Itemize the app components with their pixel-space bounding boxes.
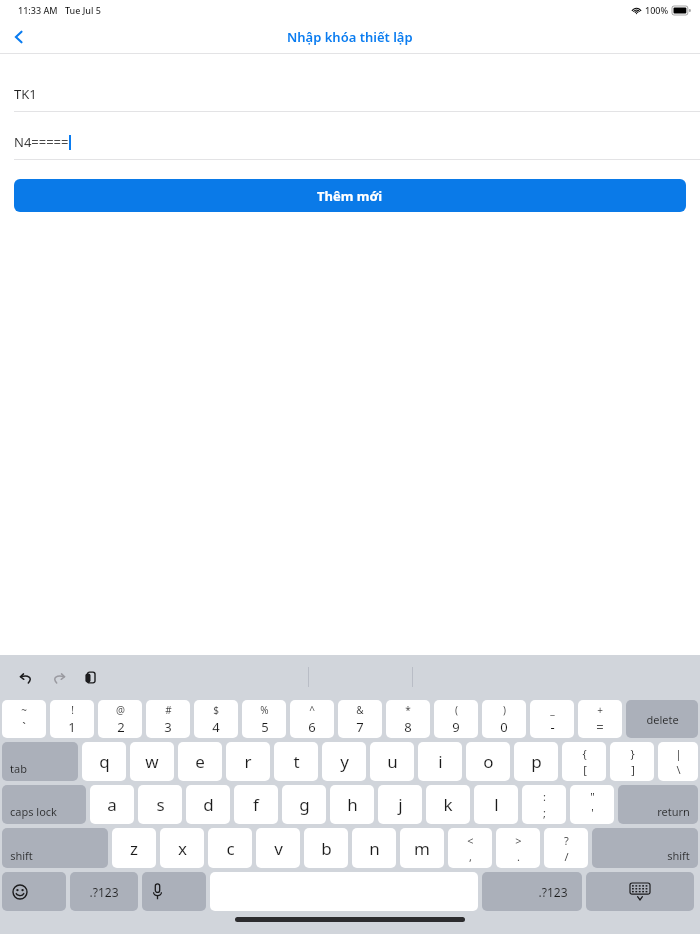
button[interactable]: c — [208, 828, 252, 868]
button[interactable]: ? — [544, 828, 588, 868]
staticText: return — [657, 804, 690, 819]
button[interactable]: @ — [98, 700, 142, 738]
button[interactable]: " — [570, 785, 614, 824]
button[interactable]: + — [578, 700, 622, 738]
button[interactable]: return — [618, 785, 698, 824]
button[interactable]: t — [274, 742, 318, 781]
button[interactable]: x — [160, 828, 204, 868]
button[interactable]: i — [418, 742, 462, 781]
button[interactable]: n — [352, 828, 396, 868]
staticText: . — [517, 849, 520, 864]
button[interactable]: p — [514, 742, 558, 781]
staticText: \ — [676, 762, 681, 777]
button[interactable]: _ — [530, 700, 574, 738]
staticText: 2 — [117, 718, 125, 736]
button[interactable]: d — [186, 785, 230, 824]
button[interactable]: shift — [2, 828, 108, 868]
button[interactable]: $ — [194, 700, 238, 738]
button[interactable]: m — [400, 828, 444, 868]
button[interactable]: shift — [592, 828, 698, 868]
staticText: d — [203, 793, 214, 816]
button[interactable]: u — [370, 742, 414, 781]
button[interactable]: TK1 — [0, 77, 700, 111]
button[interactable]: & — [338, 700, 382, 738]
button[interactable]: # — [146, 700, 190, 738]
staticText: m — [414, 837, 430, 860]
button[interactable]: v — [256, 828, 300, 868]
staticText: e — [195, 750, 205, 773]
staticText: u — [387, 750, 398, 773]
button[interactable]: q — [82, 742, 126, 781]
button[interactable]: Redo — [44, 663, 72, 691]
button[interactable]: e — [178, 742, 222, 781]
staticText: $ — [213, 703, 219, 717]
button[interactable]: l — [474, 785, 518, 824]
staticText: * — [405, 703, 411, 717]
staticText: 0 — [500, 718, 508, 736]
button[interactable]: j — [378, 785, 422, 824]
staticText: { — [582, 746, 587, 761]
button[interactable]: { — [562, 742, 606, 781]
button[interactable]: f — [234, 785, 278, 824]
staticText: p — [531, 750, 542, 773]
button[interactable]: s — [138, 785, 182, 824]
staticText: ) — [503, 703, 506, 717]
staticText: 6 — [308, 718, 316, 736]
button[interactable]: Dictate — [142, 872, 206, 911]
button[interactable]: .?123 — [482, 872, 582, 911]
button[interactable]: caps lock — [2, 785, 86, 824]
button[interactable]: Back — [4, 22, 34, 52]
staticText: ' — [591, 805, 594, 820]
staticText: b — [321, 837, 332, 860]
button[interactable]: a — [90, 785, 134, 824]
button[interactable]: g — [282, 785, 326, 824]
staticText: j — [398, 793, 403, 816]
staticText: < — [467, 833, 474, 848]
button[interactable]: ~ — [2, 700, 46, 738]
button[interactable]: < — [448, 828, 492, 868]
button[interactable]: % — [242, 700, 286, 738]
button[interactable]: Undo — [12, 663, 40, 691]
staticText: z — [130, 837, 138, 860]
staticText: 7 — [356, 718, 364, 736]
staticText: 100% — [645, 4, 669, 16]
staticText: i — [438, 750, 443, 773]
button[interactable]: tab — [2, 742, 78, 781]
button[interactable]: r — [226, 742, 270, 781]
staticText: s — [156, 793, 165, 816]
staticText: @ — [116, 703, 125, 717]
button[interactable]: h — [330, 785, 374, 824]
button[interactable]: b — [304, 828, 348, 868]
button[interactable]: } — [610, 742, 654, 781]
button[interactable]: Hide keyboard — [586, 872, 694, 911]
button[interactable]: N4===== — [0, 125, 700, 159]
button[interactable]: ) — [482, 700, 526, 738]
button[interactable]: Paste — [76, 663, 104, 691]
staticText: 5 — [261, 718, 269, 736]
button[interactable]: Emoji — [2, 872, 66, 911]
staticText: v — [274, 837, 283, 860]
button[interactable]: Thêm mới — [14, 179, 686, 212]
button[interactable]: | — [658, 742, 698, 781]
button[interactable]: z — [112, 828, 156, 868]
button[interactable]: delete — [626, 700, 698, 738]
staticText: - — [550, 718, 555, 736]
button[interactable]: o — [466, 742, 510, 781]
staticText: r — [244, 750, 252, 773]
staticText: y — [340, 750, 349, 773]
button[interactable]: ! — [50, 700, 94, 738]
staticText: Thêm mới — [317, 187, 383, 205]
button[interactable]: : — [522, 785, 566, 824]
button[interactable]: y — [322, 742, 366, 781]
button[interactable]: ( — [434, 700, 478, 738]
button[interactable]: k — [426, 785, 470, 824]
staticText: ? — [564, 833, 569, 848]
staticText: l — [494, 793, 499, 816]
button[interactable]: * — [386, 700, 430, 738]
button[interactable]: .?123 — [70, 872, 138, 911]
staticText: q — [99, 750, 110, 773]
button[interactable]: w — [130, 742, 174, 781]
button[interactable]: > — [496, 828, 540, 868]
button[interactable]: ^ — [290, 700, 334, 738]
